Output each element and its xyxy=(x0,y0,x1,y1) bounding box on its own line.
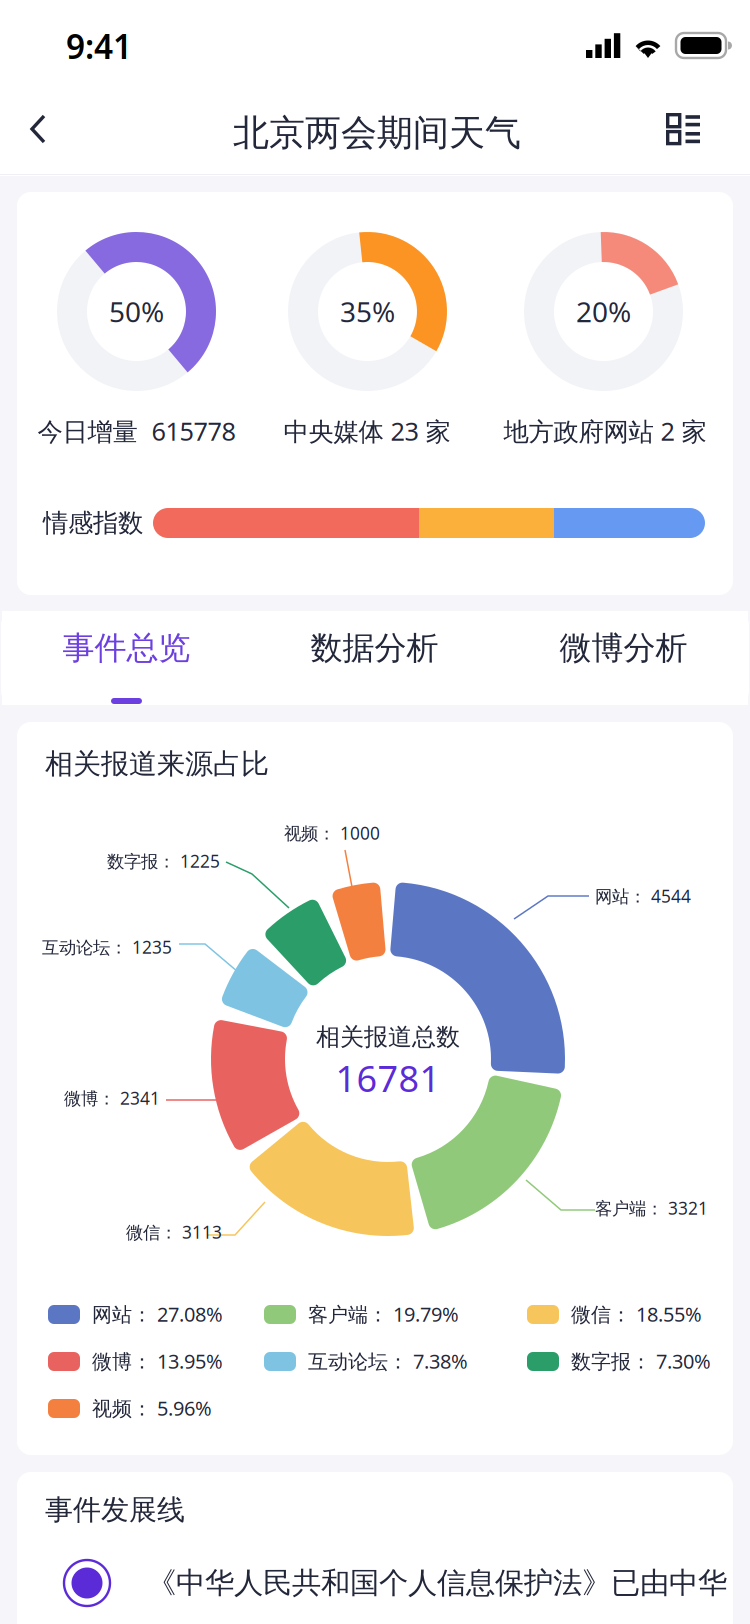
staticText: 20% xyxy=(576,293,631,330)
staticText: 网站： 27.08% xyxy=(92,1301,223,1327)
staticText: 相关报道来源占比 xyxy=(45,747,269,781)
button[interactable]: 事件总览 xyxy=(2,611,251,705)
staticText: 情感指数 xyxy=(43,507,143,538)
button[interactable]: Back xyxy=(0,90,74,168)
staticText: 客户端： 19.79% xyxy=(308,1301,459,1327)
staticText: 地方政府网站 2 家 xyxy=(503,414,706,448)
staticText: 视频： 5.96% xyxy=(92,1395,212,1421)
staticText: 微博： 13.95% xyxy=(92,1348,223,1374)
staticText: 微信： 3113 xyxy=(126,1220,222,1243)
staticText: 事件发展线 xyxy=(45,1493,185,1527)
staticText: 数据分析 xyxy=(310,628,438,668)
staticText: 今日增量 615778 xyxy=(37,414,235,448)
staticText: 客户端： 3321 xyxy=(595,1196,708,1219)
button[interactable]: List view xyxy=(642,90,726,168)
staticText: 数字报： 7.30% xyxy=(571,1348,711,1374)
button[interactable]: 微博分析 xyxy=(499,611,748,705)
staticText: 35% xyxy=(340,293,395,330)
staticText: 微博分析 xyxy=(559,628,687,668)
staticText: 相关报道总数 xyxy=(316,1022,460,1052)
staticText: 9:41 xyxy=(66,24,132,68)
staticText: 事件总览 xyxy=(62,628,190,668)
button[interactable]: 数据分析 xyxy=(250,611,499,705)
staticText: 微信： 18.55% xyxy=(571,1301,702,1327)
staticText: 视频： 1000 xyxy=(284,821,380,844)
staticText: 互动论坛： 7.38% xyxy=(308,1348,468,1374)
staticText: 网站： 4544 xyxy=(595,884,691,907)
staticText: 16781 xyxy=(335,1054,440,1102)
staticText: 数字报： 1225 xyxy=(107,849,220,872)
staticText: 北京两会期间天气 xyxy=(233,111,521,155)
staticText: 互动论坛： 1235 xyxy=(42,935,172,958)
staticText: 《中华人民共和国个人信息保护法》已由中华 xyxy=(147,1565,727,1601)
staticText: 微博： 2341 xyxy=(64,1086,160,1109)
staticText: 中央媒体 23 家 xyxy=(283,414,450,448)
staticText: 50% xyxy=(109,293,164,330)
